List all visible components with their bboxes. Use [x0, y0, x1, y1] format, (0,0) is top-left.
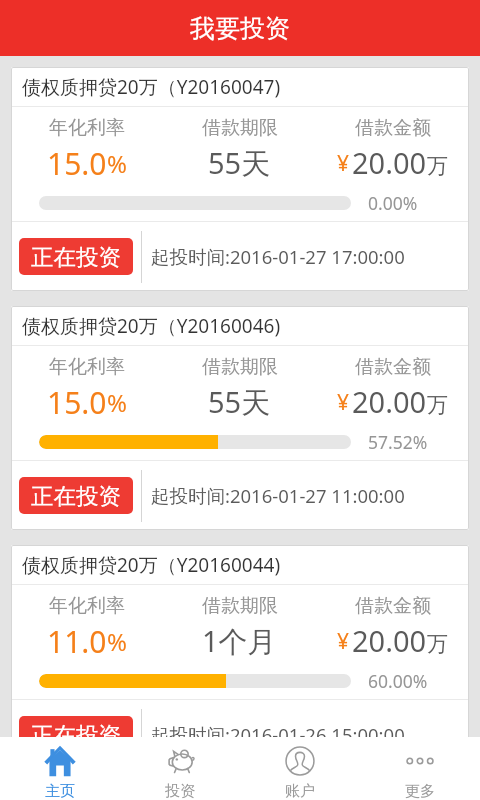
- staticText: 起投时间:2016-01-26 15:00:00: [151, 722, 405, 737]
- staticText: 正在投资: [31, 721, 121, 737]
- staticText: 账户: [285, 782, 315, 800]
- staticText: 借款期限: [202, 594, 278, 618]
- button[interactable]: 债权质押贷20万（Y20160044): [11, 545, 469, 737]
- staticText: 55天: [208, 143, 271, 183]
- staticText: 55天: [208, 382, 271, 422]
- staticText: 起投时间:2016-01-27 17:00:00: [151, 244, 405, 269]
- staticText: 1个月: [202, 621, 277, 661]
- staticText: 20.00: [352, 621, 427, 660]
- staticText: 年化利率: [49, 116, 125, 140]
- staticText: 万: [427, 153, 448, 179]
- staticText: 债权质押贷20万（Y20160047): [22, 74, 281, 100]
- staticText: 15.0: [47, 382, 107, 423]
- staticText: %: [107, 625, 127, 658]
- button[interactable]: 正在投资: [19, 716, 133, 737]
- staticText: 投资: [165, 782, 195, 800]
- staticText: ¥: [337, 627, 350, 656]
- staticText: 债权质押贷20万（Y20160044): [22, 552, 281, 578]
- staticText: 借款金额: [355, 355, 431, 379]
- button[interactable]: 正在投资: [19, 477, 133, 514]
- staticText: 万: [427, 392, 448, 418]
- staticText: 15.0: [47, 143, 107, 184]
- staticText: 借款期限: [202, 116, 278, 140]
- staticText: 20.00: [352, 143, 427, 182]
- staticText: 11.0: [47, 621, 107, 662]
- staticText: 借款金额: [355, 116, 431, 140]
- staticText: 20.00: [352, 382, 427, 421]
- staticText: 正在投资: [31, 482, 121, 510]
- button[interactable]: 主页: [0, 737, 120, 800]
- staticText: 借款金额: [355, 594, 431, 618]
- staticText: 万: [427, 631, 448, 657]
- button[interactable]: 投资: [120, 737, 240, 800]
- staticText: 主页: [45, 782, 75, 800]
- staticText: 0.00%: [368, 191, 418, 215]
- staticText: 我要投资: [190, 13, 290, 44]
- button[interactable]: 债权质押贷20万（Y20160047): [11, 67, 469, 291]
- staticText: 年化利率: [49, 355, 125, 379]
- staticText: ¥: [337, 149, 350, 178]
- staticText: ¥: [337, 388, 350, 417]
- staticText: %: [107, 147, 127, 180]
- button[interactable]: 正在投资: [19, 238, 133, 275]
- staticText: 更多: [405, 782, 435, 800]
- staticText: 60.00%: [368, 669, 428, 693]
- staticText: 年化利率: [49, 594, 125, 618]
- button[interactable]: 更多: [360, 737, 480, 800]
- staticText: 债权质押贷20万（Y20160046): [22, 313, 281, 339]
- staticText: %: [107, 386, 127, 419]
- staticText: 正在投资: [31, 243, 121, 271]
- staticText: 起投时间:2016-01-27 11:00:00: [151, 483, 405, 508]
- staticText: 57.52%: [368, 430, 428, 454]
- staticText: 借款期限: [202, 355, 278, 379]
- button[interactable]: 账户: [240, 737, 360, 800]
- button[interactable]: 债权质押贷20万（Y20160046): [11, 306, 469, 530]
